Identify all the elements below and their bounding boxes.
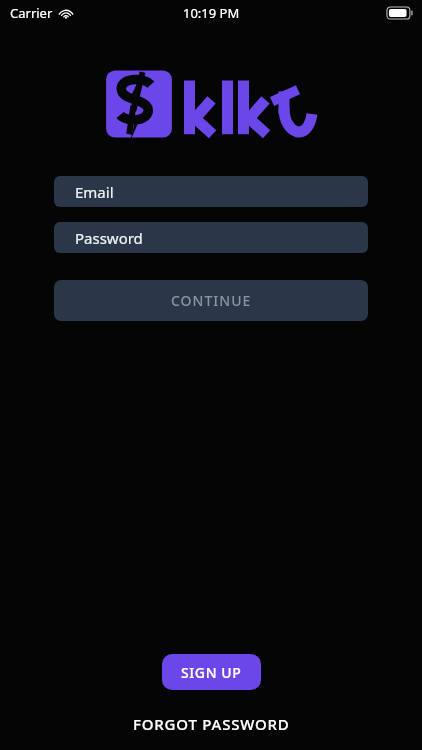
button[interactable]: Password: [54, 222, 368, 253]
button[interactable]: SIGN UP: [162, 654, 261, 690]
staticText: SIGN UP: [181, 663, 242, 682]
staticText: FORGOT PASSWORD: [133, 714, 290, 734]
staticText: Email: [75, 182, 114, 202]
button[interactable]: CONTINUE: [54, 280, 368, 321]
staticText: 10:19 PM: [183, 4, 240, 22]
button[interactable]: Email: [54, 176, 368, 207]
other: kikt logo: [104, 62, 174, 146]
staticText: Password: [75, 228, 143, 248]
staticText: Carrier: [10, 4, 53, 22]
button[interactable]: FORGOT PASSWORD: [121, 710, 302, 738]
staticText: CONTINUE: [171, 291, 252, 310]
